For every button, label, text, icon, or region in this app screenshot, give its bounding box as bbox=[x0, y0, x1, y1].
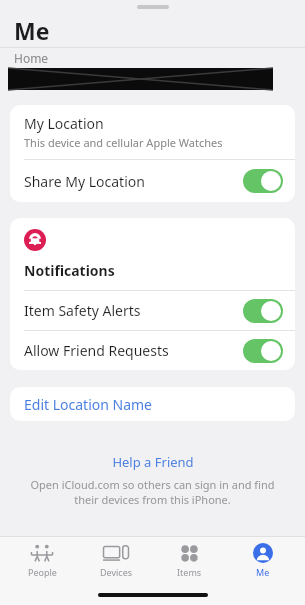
staticText: Home bbox=[14, 50, 49, 66]
button[interactable]: Item Safety Alerts bbox=[10, 291, 295, 330]
other: People bbox=[30, 543, 54, 563]
staticText: Items bbox=[177, 566, 202, 578]
button[interactable]: Toggle on bbox=[243, 299, 283, 323]
other: Devices bbox=[103, 544, 129, 562]
staticText: Me bbox=[14, 15, 50, 46]
button[interactable]: Devices bbox=[85, 537, 147, 578]
staticText: Me bbox=[256, 566, 270, 578]
other: Items bbox=[180, 544, 199, 563]
button[interactable]: Share My Location bbox=[10, 160, 295, 202]
button[interactable]: My Location bbox=[10, 105, 295, 159]
other: Me bbox=[253, 543, 273, 563]
staticText: Share My Location bbox=[24, 172, 243, 191]
button[interactable]: Toggle on bbox=[243, 339, 283, 363]
staticText: Allow Friend Requests bbox=[24, 341, 243, 360]
staticText: People bbox=[28, 566, 57, 578]
button[interactable]: People bbox=[11, 537, 73, 578]
staticText: Edit Location Name bbox=[24, 395, 152, 414]
button[interactable]: Edit Location Name bbox=[10, 387, 295, 421]
staticText: Notifications bbox=[24, 261, 115, 280]
button[interactable]: Items bbox=[158, 537, 220, 578]
staticText: Help a Friend bbox=[112, 453, 194, 471]
staticText: This device and cellular Apple Watches bbox=[24, 135, 223, 150]
button[interactable]: Notifications bbox=[10, 218, 295, 290]
button[interactable]: Toggle on bbox=[243, 169, 283, 193]
button[interactable]: Allow Friend Requests bbox=[10, 331, 295, 370]
staticText: Open iCloud.com so others can sign in an… bbox=[24, 477, 281, 507]
button[interactable]: Help a Friend bbox=[0, 453, 305, 471]
staticText: My Location bbox=[24, 114, 104, 133]
staticText: Item Safety Alerts bbox=[24, 301, 243, 320]
other: Notifications bbox=[24, 229, 46, 251]
staticText: Devices bbox=[100, 566, 133, 578]
button[interactable]: Me bbox=[232, 537, 294, 578]
